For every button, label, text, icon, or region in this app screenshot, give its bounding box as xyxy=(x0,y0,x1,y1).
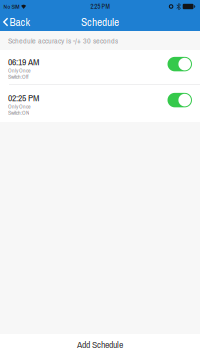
staticText: Schedule accuracy is -/+ 30 seconds xyxy=(8,35,118,46)
staticText: Back xyxy=(9,14,30,30)
button[interactable]: 02:25 PM xyxy=(0,85,200,122)
staticText: 02:25 PM xyxy=(8,92,39,104)
staticText: 2:25 PM xyxy=(90,2,109,11)
staticText: Only Once xyxy=(8,103,31,110)
button[interactable]: 06:19 AM xyxy=(0,50,200,85)
button[interactable]: Back xyxy=(0,13,34,31)
staticText: 06:19 AM xyxy=(8,56,39,68)
staticText: Add Schedule xyxy=(77,338,123,351)
button[interactable]: Add Schedule xyxy=(0,334,200,355)
staticText: Switch:Off xyxy=(8,73,29,80)
staticText: No SIM xyxy=(3,2,19,11)
staticText: Switch:ON xyxy=(8,109,29,116)
staticText: Only Once xyxy=(8,67,31,74)
staticText: Schedule xyxy=(81,14,119,30)
